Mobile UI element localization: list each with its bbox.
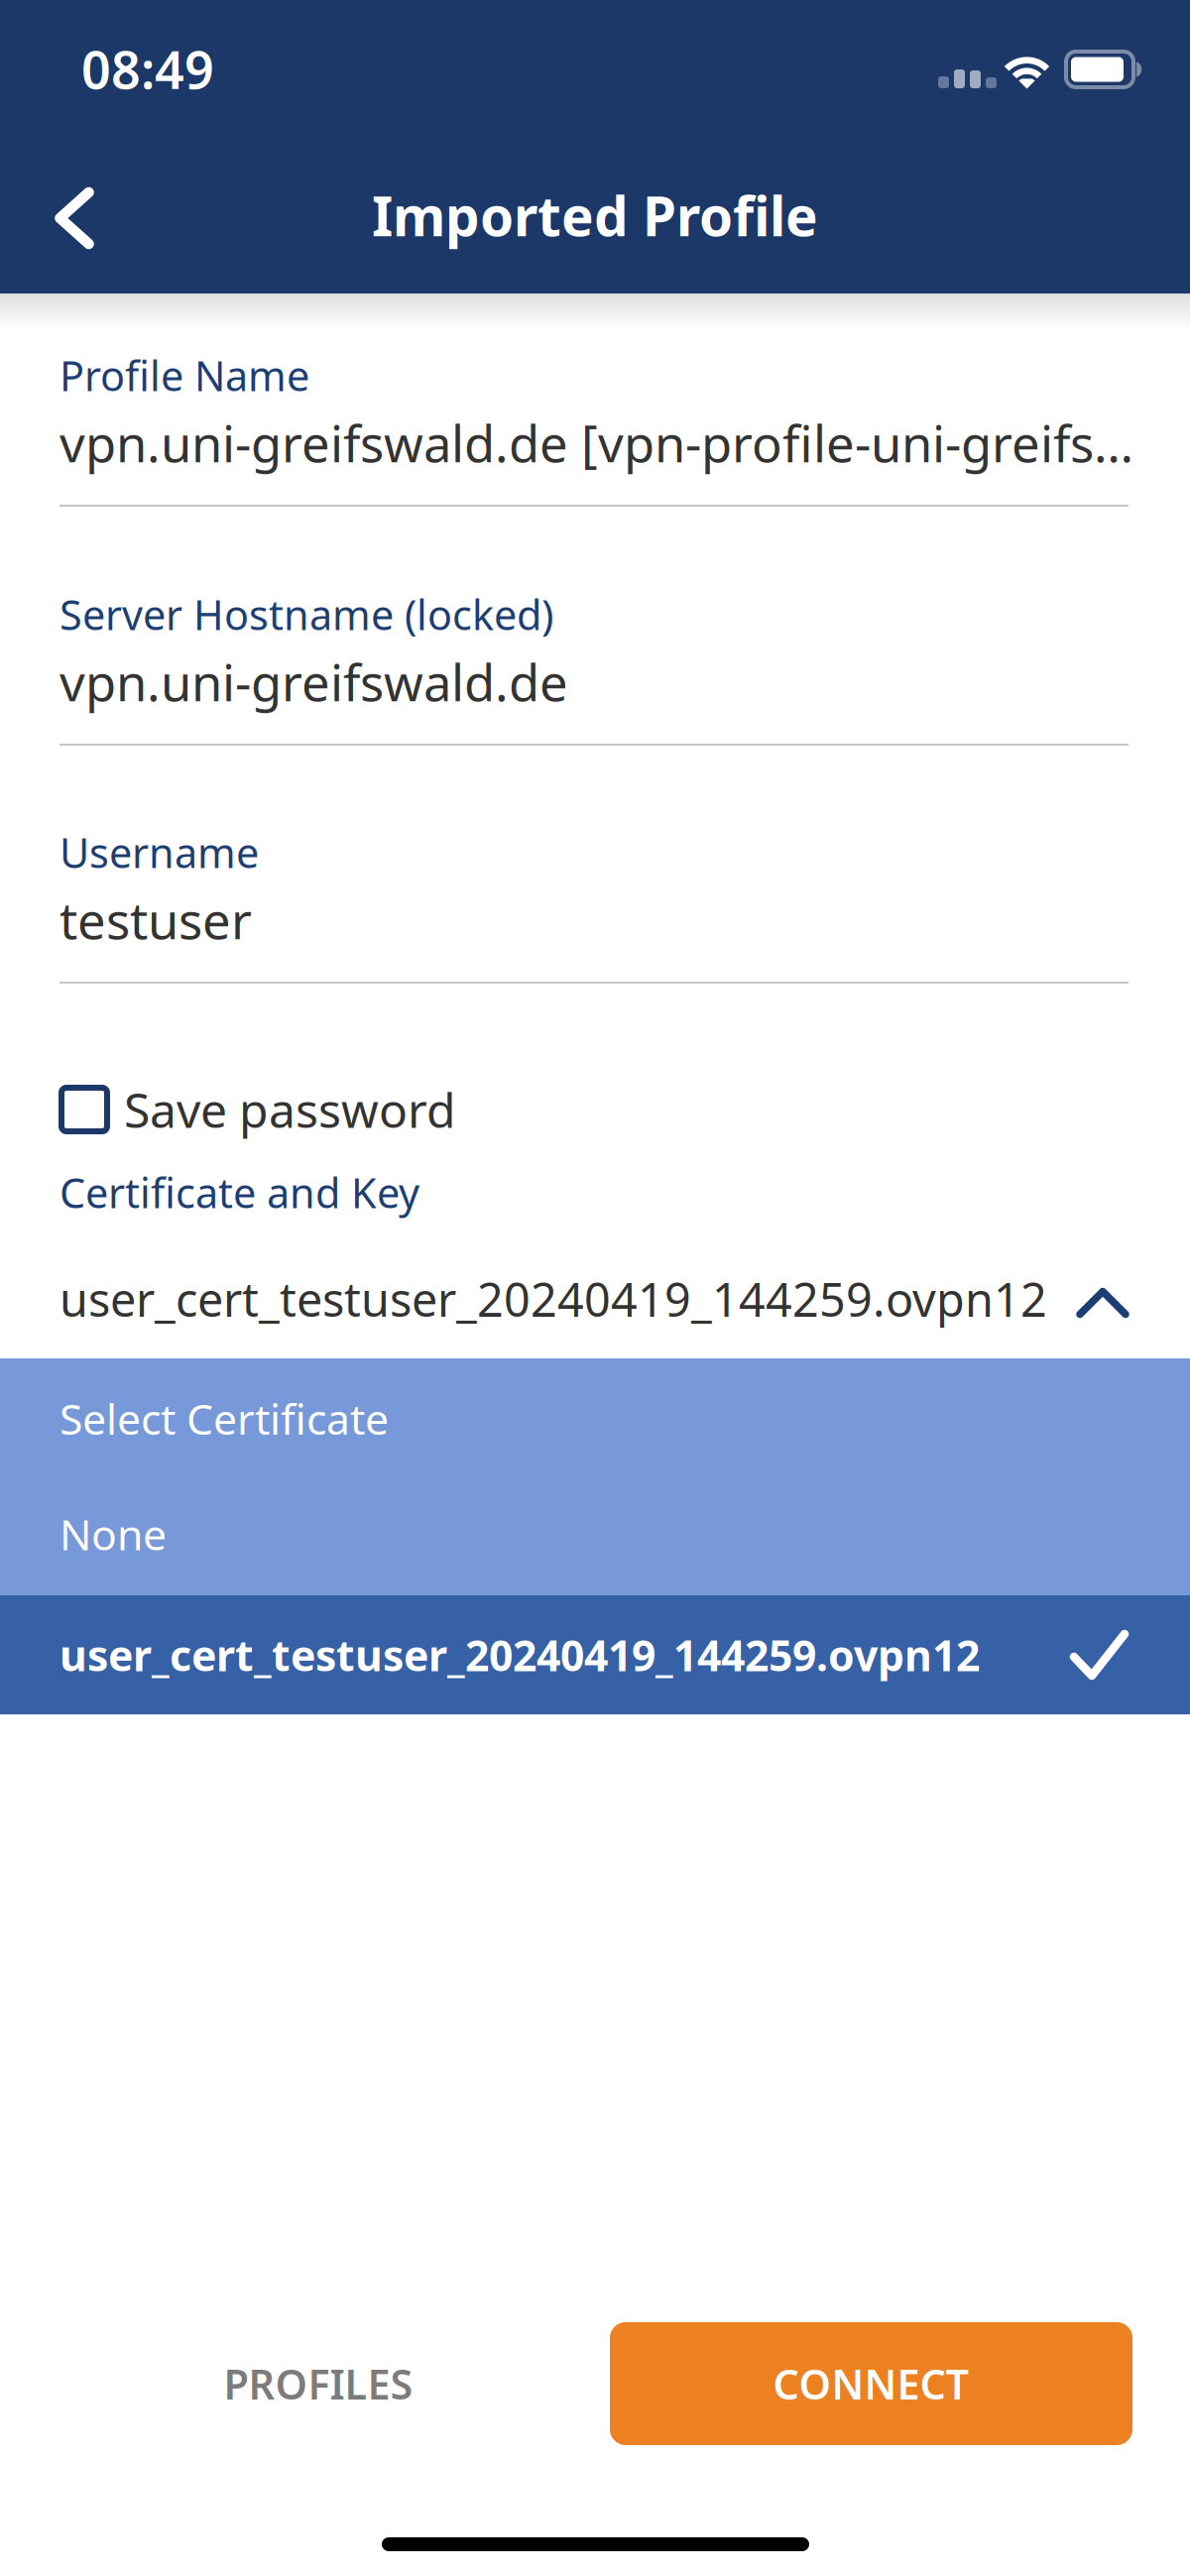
staticText: vpn.uni-greifswald.de — [59, 648, 568, 715]
staticText: testuser — [59, 886, 252, 953]
staticText: vpn.uni-greifswald.de [vpn-profile-uni-g… — [59, 410, 1133, 476]
staticText: Select Certificate — [59, 1390, 389, 1446]
staticText: Username — [59, 825, 259, 879]
staticText: user_cert_testuser_20240419_144259.ovpn1… — [59, 1627, 980, 1683]
staticText: Certificate and Key — [59, 1165, 419, 1219]
button[interactable]: user_cert_testuser_20240419_144259.ovpn1… — [0, 1595, 1190, 1714]
button[interactable]: None — [59, 1497, 1129, 1571]
staticText: Imported Profile — [372, 179, 818, 251]
staticText: None — [59, 1506, 167, 1562]
staticText: 08:49 — [81, 35, 214, 103]
button[interactable]: CONNECT — [610, 2322, 1132, 2445]
staticText: user_cert_testuser_20240419_144259.ovpn1… — [59, 1268, 1047, 1330]
button[interactable]: Save password — [61, 1072, 1130, 1147]
button[interactable]: user_cert_testuser_20240419_144259.ovpn1… — [59, 1262, 1129, 1336]
staticText: PROFILES — [224, 2356, 413, 2411]
button[interactable]: Back — [13, 163, 136, 274]
staticText: Save password — [124, 1078, 456, 1141]
staticText: Server Hostname (locked) — [59, 587, 553, 641]
staticText: CONNECT — [773, 2356, 969, 2411]
staticText: Profile Name — [59, 348, 309, 402]
button[interactable]: PROFILES — [173, 2322, 464, 2445]
